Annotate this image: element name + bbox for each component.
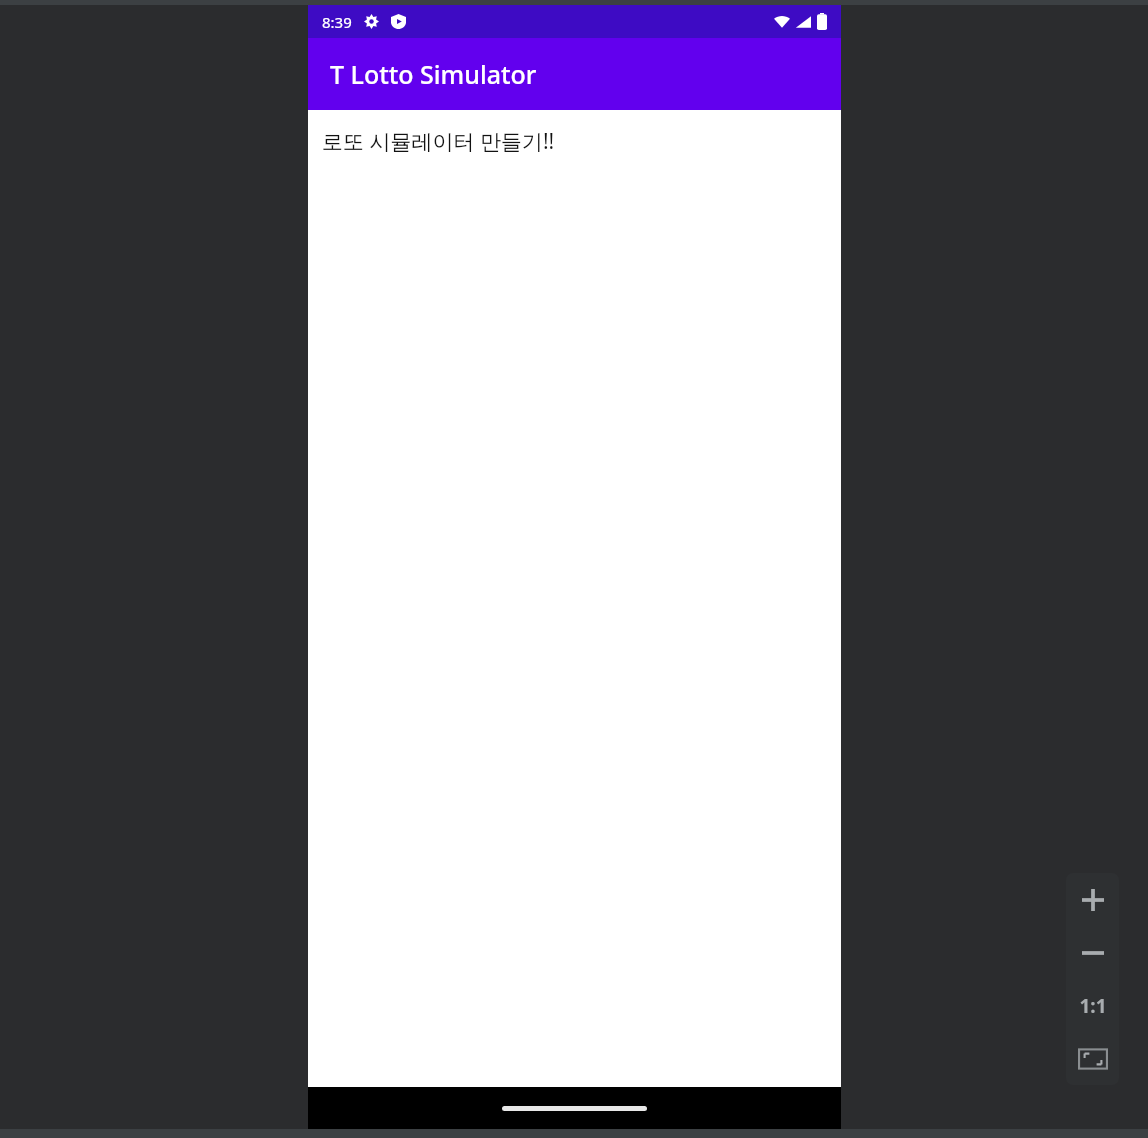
staticText: 8:39	[322, 12, 352, 32]
button[interactable]: Zoom in	[1066, 873, 1119, 926]
staticText: 로또 시뮬레이터 만들기!!	[322, 127, 555, 156]
button[interactable]: 1:1	[1066, 979, 1119, 1032]
button[interactable]: Fit to window	[1066, 1032, 1119, 1085]
button[interactable]: Zoom out	[1066, 926, 1119, 979]
staticText: T Lotto Simulator	[330, 57, 537, 91]
staticText: 1:1	[1079, 993, 1107, 1019]
